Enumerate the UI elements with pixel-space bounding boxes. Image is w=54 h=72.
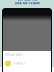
staticText: BUY INTO THE xyxy=(17,0,36,1)
staticText: DIRECTOR'S VISION xyxy=(14,1,39,5)
staticText: Channel xyxy=(13,62,25,65)
staticText: Official Trailer xyxy=(5,53,23,56)
